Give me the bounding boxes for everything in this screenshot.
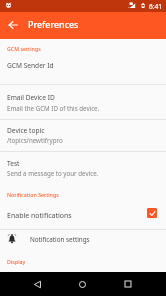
button[interactable]: Enable notifications: [0, 205, 166, 229]
button[interactable]: Notification settings: [0, 230, 166, 254]
staticText: GCM settings: [7, 45, 41, 52]
staticText: GCM Sender Id: [7, 61, 54, 70]
staticText: Display: [7, 258, 26, 265]
staticText: Enable notifications: [7, 211, 72, 221]
button[interactable]: Test: [0, 152, 166, 183]
button[interactable]: Email Device ID: [0, 85, 166, 119]
staticText: Email the GCM ID of this device.: [7, 104, 100, 112]
button[interactable]: Recent apps: [116, 272, 140, 296]
staticText: Notification Settings: [7, 191, 59, 198]
staticText: Send a message to your device.: [7, 169, 99, 177]
staticText: /topics/newtifrypro: [7, 136, 63, 144]
button[interactable]: Back: [25, 272, 49, 296]
button[interactable]: Home: [70, 272, 94, 296]
staticText: Preferences: [28, 18, 79, 30]
button[interactable]: Navigate up: [4, 16, 22, 34]
staticText: Email Device ID: [7, 93, 55, 102]
staticText: Notification settings: [30, 235, 90, 244]
staticText: Device topic: [7, 126, 45, 135]
button[interactable]: GCM Sender Id: [0, 57, 166, 84]
button[interactable]: Device topic: [0, 119, 166, 151]
staticText: 6:41: [149, 2, 163, 11]
staticText: Test: [7, 159, 20, 168]
